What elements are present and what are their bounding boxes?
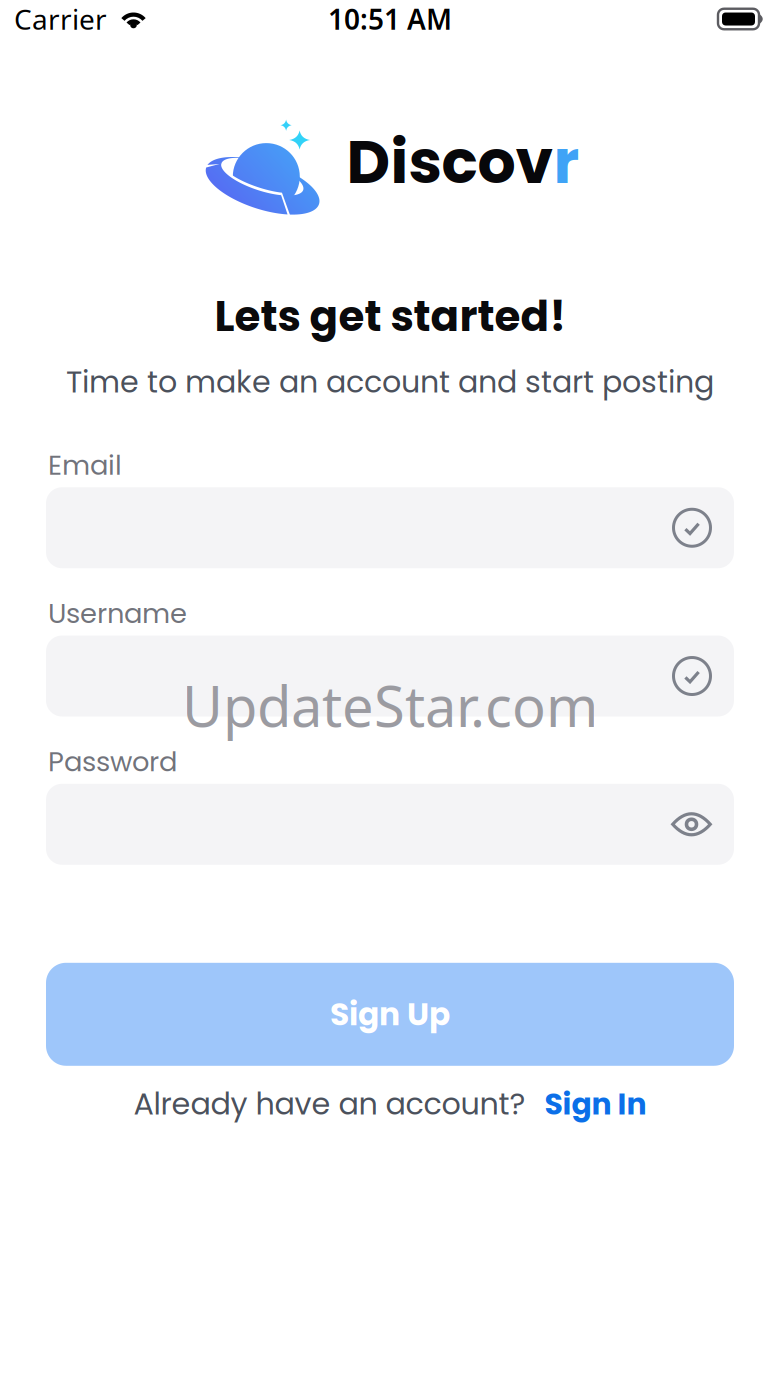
staticText: Already have an account?: [133, 1083, 525, 1125]
button[interactable]: Sign In: [544, 1083, 646, 1125]
staticText: Password: [48, 742, 177, 781]
staticText: Email: [48, 446, 122, 484]
staticText: Username: [48, 594, 187, 633]
staticText: r: [553, 120, 579, 204]
staticText: 10:51 AM: [328, 0, 452, 38]
button[interactable]: Sign Up: [46, 963, 734, 1066]
staticText: Lets get started!: [214, 287, 565, 346]
button[interactable]: [46, 635, 734, 716]
button[interactable]: [46, 487, 734, 568]
staticText: UpdateStar.com: [182, 668, 598, 742]
staticText: Discov: [346, 120, 553, 204]
button[interactable]: [46, 784, 734, 865]
staticText: Time to make an account and start postin…: [66, 361, 714, 403]
staticText: Sign Up: [330, 992, 450, 1036]
staticText: Carrier: [14, 0, 107, 38]
staticText: Sign In: [544, 1083, 646, 1125]
